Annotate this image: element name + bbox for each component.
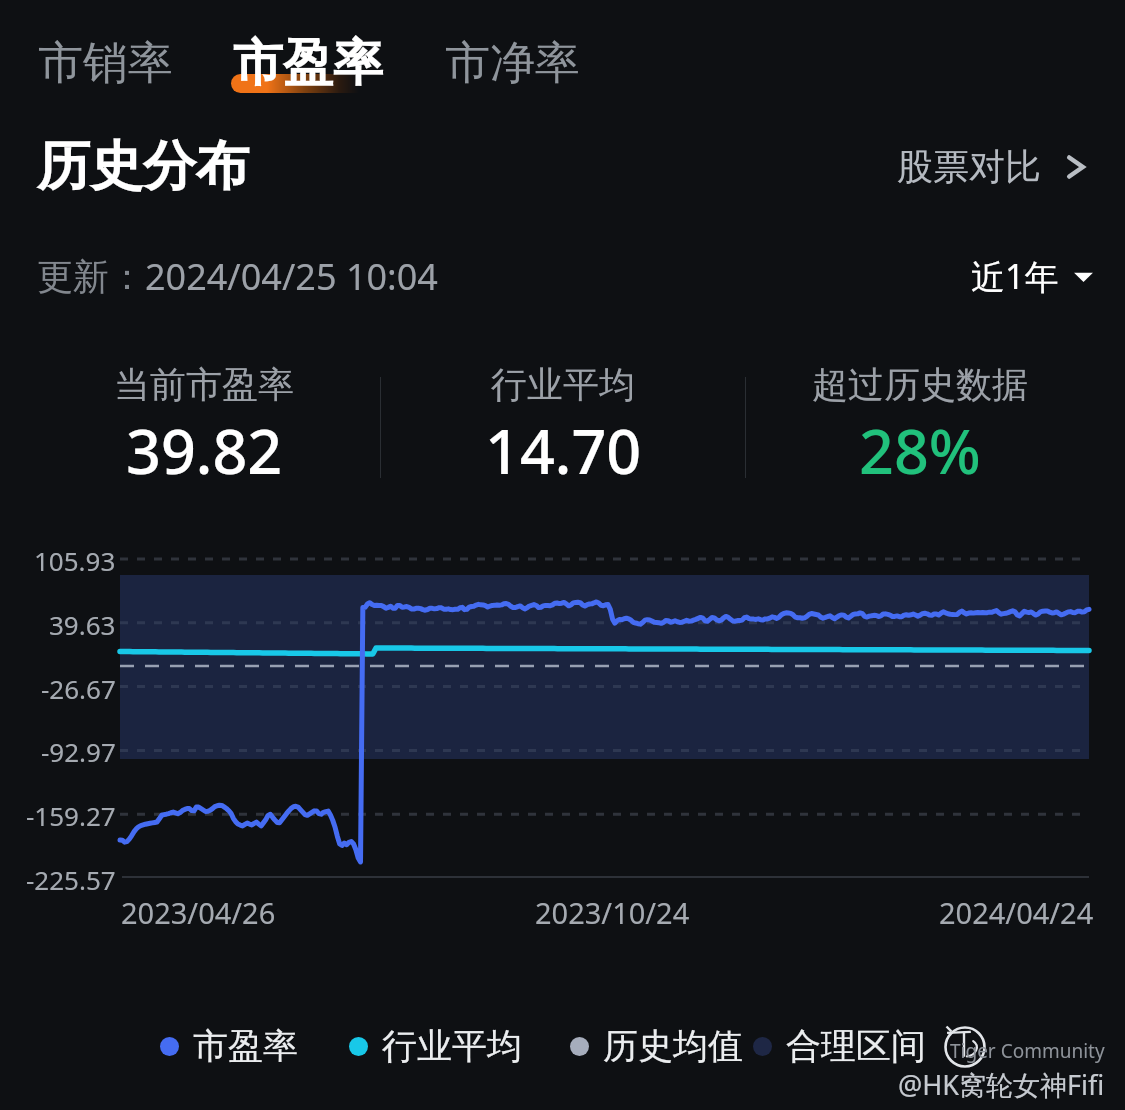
button[interactable]: 行业平均 — [383, 362, 743, 487]
staticText: 合理区间 — [786, 1024, 926, 1068]
staticText: 当前市盈率 — [114, 362, 294, 407]
staticText: 历史分布 — [37, 133, 249, 200]
staticText: 超过历史数据 — [812, 362, 1028, 407]
staticText: -159.27 — [26, 798, 116, 833]
button[interactable]: 市销率 — [38, 35, 173, 92]
staticText: 行业平均 — [382, 1024, 522, 1068]
button[interactable]: 近1年 — [971, 253, 1094, 299]
button[interactable]: 市盈率 — [160, 1024, 298, 1068]
staticText: 105.93 — [34, 543, 116, 578]
other: Tiger Community watermark — [944, 1026, 986, 1068]
button[interactable]: 历史均值 — [570, 1024, 743, 1068]
button[interactable]: 合理区间 — [753, 1024, 926, 1068]
staticText: 市盈率 — [233, 32, 383, 95]
staticText: @HK窝轮女神Fifi — [898, 1066, 1105, 1103]
button[interactable]: 超过历史数据 — [740, 362, 1100, 487]
staticText: 2023/10/24 — [535, 893, 690, 932]
staticText: 39.63 — [49, 607, 116, 642]
button[interactable]: 市盈率 — [233, 32, 383, 95]
staticText: 2023/04/26 — [121, 893, 276, 932]
staticText: 2024/04/25 10:04 — [145, 252, 438, 301]
button[interactable]: 市净率 — [445, 35, 580, 92]
staticText: 行业平均 — [491, 362, 635, 407]
staticText: 14.70 — [485, 409, 642, 487]
staticText: -92.97 — [41, 734, 116, 769]
staticText: 股票对比 — [897, 144, 1041, 189]
staticText: 39.82 — [126, 409, 283, 487]
staticText: 2024/04/24 — [939, 893, 1094, 932]
staticText: Tiger Community — [950, 1038, 1105, 1064]
staticText: 市盈率 — [193, 1024, 298, 1068]
button[interactable]: 股票对比 — [897, 144, 1093, 189]
staticText: 历史均值 — [603, 1024, 743, 1068]
staticText: 近1年 — [971, 253, 1059, 299]
staticText: 28% — [859, 409, 981, 487]
staticText: 市净率 — [445, 35, 580, 92]
staticText: 更新： — [37, 254, 145, 299]
button[interactable]: 当前市盈率 — [24, 362, 384, 487]
staticText: -225.57 — [26, 862, 116, 897]
staticText: 市销率 — [38, 35, 173, 92]
staticText: -26.67 — [41, 671, 116, 706]
button[interactable]: 行业平均 — [349, 1024, 522, 1068]
